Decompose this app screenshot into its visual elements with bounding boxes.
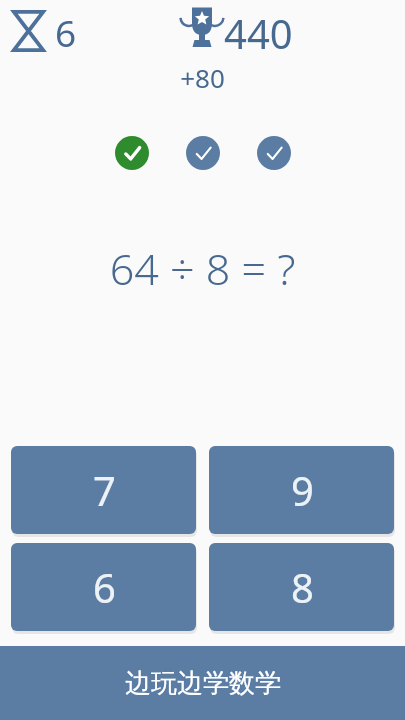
button[interactable]: Answered correctly	[257, 136, 291, 170]
button[interactable]: Answered correctly	[186, 136, 220, 170]
button[interactable]: 9	[209, 446, 394, 534]
button[interactable]: 边玩边学数学	[0, 646, 405, 720]
button[interactable]: 6	[11, 543, 196, 631]
button[interactable]: Answered correctly	[115, 136, 149, 170]
button[interactable]: Lives remaining	[12, 10, 45, 52]
staticText: 7	[93, 463, 116, 517]
staticText: 边玩边学数学	[125, 667, 281, 700]
staticText: 6	[93, 560, 116, 614]
staticText: 8	[291, 560, 314, 614]
staticText: 440	[224, 6, 293, 60]
staticText: 6	[55, 7, 77, 57]
staticText: 9	[291, 463, 314, 517]
button[interactable]: 7	[11, 446, 196, 534]
button[interactable]: Score trophy	[177, 5, 227, 55]
staticText: 64 ÷ 8 = ?	[0, 239, 405, 298]
button[interactable]: 8	[209, 543, 394, 631]
staticText: +80	[0, 60, 405, 95]
